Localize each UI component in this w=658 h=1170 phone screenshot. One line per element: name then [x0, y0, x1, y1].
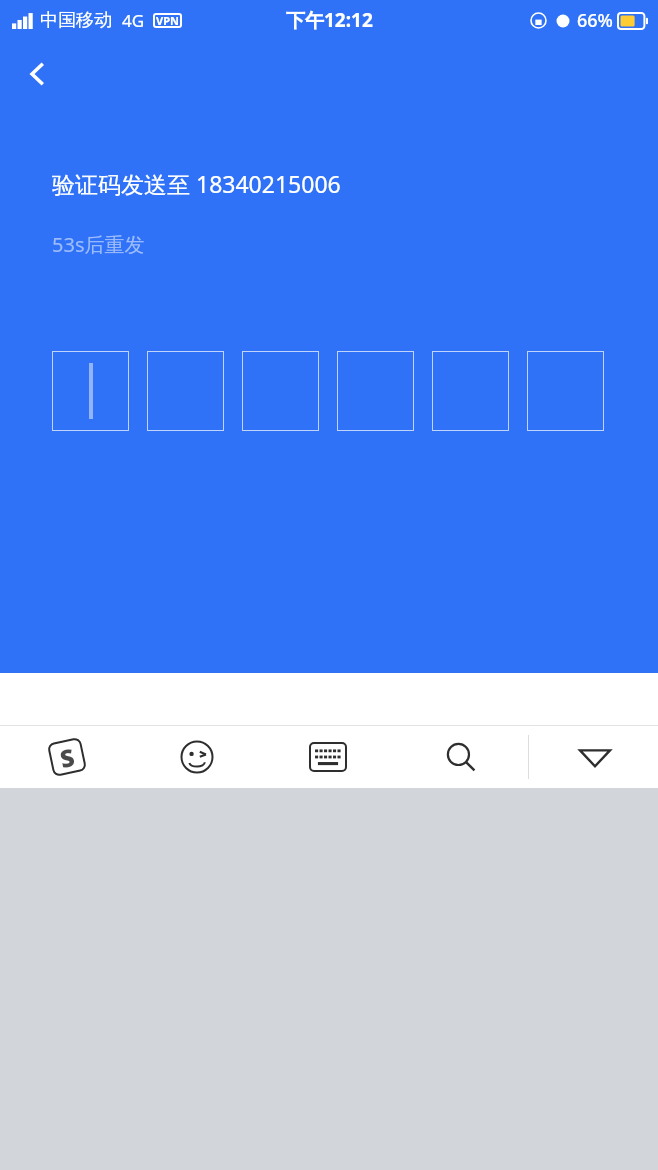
- staticText: 66%: [577, 8, 613, 33]
- button[interactable]: Code digit 6: [527, 351, 604, 431]
- button[interactable]: Sogou input: [38, 728, 96, 786]
- button[interactable]: Emoji: [169, 729, 225, 785]
- button[interactable]: Hide keyboard: [567, 729, 623, 785]
- button[interactable]: Search: [433, 729, 489, 785]
- staticText: 下午12:12: [286, 7, 373, 33]
- button[interactable]: Code digit 5: [432, 351, 509, 431]
- staticText: 中国移动: [40, 9, 112, 32]
- button[interactable]: Code digit 4: [337, 351, 414, 431]
- staticText: S: [57, 740, 77, 775]
- staticText: 4G: [122, 9, 145, 32]
- button[interactable]: Back: [10, 46, 66, 102]
- staticText: 53s后重发: [52, 231, 145, 258]
- button[interactable]: Code digit 3: [242, 351, 319, 431]
- button[interactable]: Code digit 1: [52, 351, 129, 431]
- button[interactable]: Keyboard layout: [300, 729, 356, 785]
- staticText: 验证码发送至 18340215006: [52, 168, 341, 199]
- button[interactable]: Code digit 2: [147, 351, 224, 431]
- staticText: VPN: [156, 13, 179, 28]
